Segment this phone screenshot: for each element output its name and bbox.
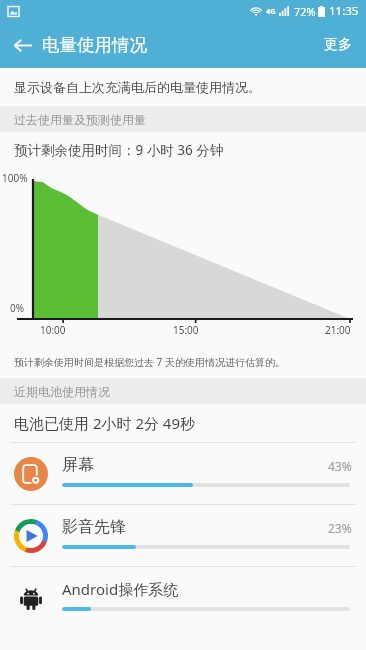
button[interactable]: 屏幕 <box>0 443 366 504</box>
button[interactable]: Back <box>0 23 44 67</box>
staticText: 更多 <box>324 36 352 54</box>
staticText: 15:00 <box>173 323 199 337</box>
staticText: 过去使用量及预测使用量 <box>14 112 146 127</box>
staticText: 23% <box>328 520 352 536</box>
staticText: 0% <box>10 301 25 315</box>
button[interactable]: Android操作系统 <box>0 567 366 628</box>
staticText: 11:35 <box>329 3 359 19</box>
button[interactable]: 更多 <box>310 26 366 64</box>
button[interactable]: 影音先锋 <box>0 505 366 566</box>
staticText: 电量使用情况 <box>42 34 147 56</box>
staticText: 43% <box>328 458 352 474</box>
staticText: 21:00 <box>325 323 351 337</box>
staticText: 显示设备自上次充满电后的电量使用情况。 <box>14 79 261 95</box>
staticText: 100% <box>2 171 28 185</box>
staticText: 72% <box>294 4 316 19</box>
staticText: 影音先锋 <box>62 517 126 537</box>
staticText: 预计剩余使用时间是根据您过去 7 天的使用情况进行估算的。 <box>14 355 285 369</box>
staticText: 屏幕 <box>62 455 94 475</box>
staticText: 电池已使用 2小时 2分 49秒 <box>14 413 196 433</box>
staticText: Android操作系统 <box>62 579 179 599</box>
staticText: 近期电池使用情况 <box>14 384 110 399</box>
staticText: 4G <box>266 6 276 16</box>
staticText: 预计剩余使用时间：9 小时 36 分钟 <box>14 141 224 159</box>
staticText: 10:00 <box>40 323 66 337</box>
